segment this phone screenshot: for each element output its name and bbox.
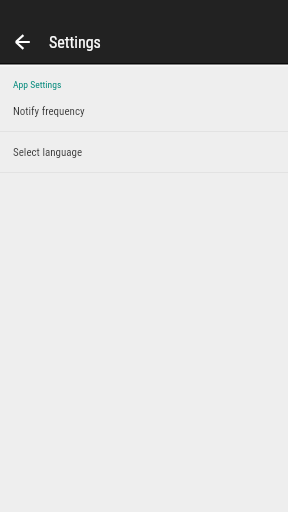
staticText: App Settings (13, 79, 62, 90)
button[interactable]: Notify frequency (0, 91, 288, 132)
staticText: Settings (49, 33, 101, 52)
button[interactable]: Back (5, 24, 41, 60)
button[interactable]: Select language (0, 132, 288, 173)
staticText: Notify frequency (13, 105, 85, 118)
staticText: Select language (13, 146, 83, 159)
